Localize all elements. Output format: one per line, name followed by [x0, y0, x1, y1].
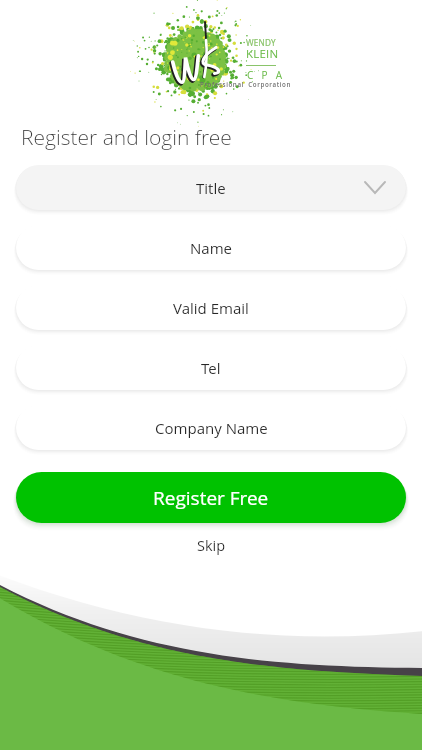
staticText: Valid Email: [173, 298, 249, 318]
other: Select title: [365, 182, 385, 193]
staticText: Tel: [201, 358, 221, 378]
staticText: Professional Corporation: [200, 80, 291, 88]
staticText: C P A: [247, 68, 285, 82]
button[interactable]: Title: [16, 165, 406, 210]
button[interactable]: Skip: [187, 534, 236, 558]
staticText: Name: [190, 238, 233, 258]
staticText: Register and login free: [21, 123, 232, 152]
staticText: Skip: [197, 536, 226, 556]
staticText: WENDY: [246, 37, 276, 48]
staticText: Register Free: [153, 485, 269, 511]
button[interactable]: Register Free: [16, 472, 406, 523]
staticText: Title: [196, 178, 226, 198]
staticText: KLEIN: [246, 46, 279, 62]
button[interactable]: Company Name: [16, 405, 406, 450]
button[interactable]: Name: [16, 225, 406, 270]
staticText: Company Name: [155, 418, 268, 438]
button[interactable]: Valid Email: [16, 285, 406, 330]
button[interactable]: Tel: [16, 345, 406, 390]
